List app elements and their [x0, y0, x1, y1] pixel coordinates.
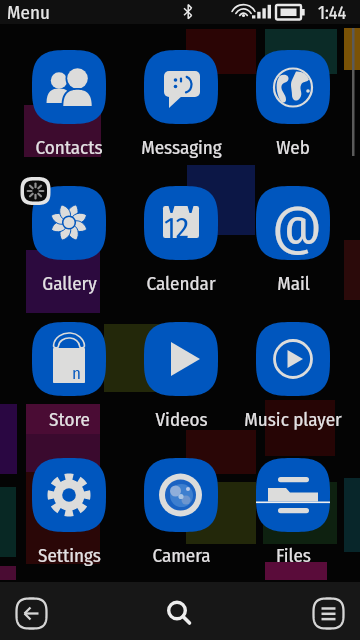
staticText: Menu [7, 1, 50, 24]
button[interactable]: n [13, 322, 125, 434]
button[interactable]: @ [237, 186, 349, 298]
staticText: Gallery [42, 272, 97, 295]
button[interactable]: Gallery [13, 186, 125, 298]
button[interactable]: Settings [13, 458, 125, 570]
staticText: Messaging [141, 136, 222, 159]
button[interactable]: Videos [125, 322, 237, 434]
staticText: Calendar [146, 272, 216, 295]
button[interactable]: Messaging [125, 50, 237, 162]
staticText: Contacts [35, 136, 103, 159]
button[interactable]: Search [163, 597, 196, 630]
staticText: Music player [244, 408, 342, 431]
staticText: Videos [155, 408, 208, 431]
staticText: Mail [277, 272, 310, 295]
staticText: Files [276, 544, 311, 567]
button[interactable]: Files [237, 458, 349, 570]
button[interactable]: Camera [125, 458, 237, 570]
staticText: 12 [164, 210, 189, 246]
button[interactable]: Web [237, 50, 349, 162]
staticText: Web [276, 136, 310, 159]
button[interactable]: Music player [237, 322, 349, 434]
staticText: Camera [152, 544, 211, 567]
button[interactable]: Contacts [13, 50, 125, 162]
button[interactable]: 12 [125, 186, 237, 298]
button[interactable]: Back [15, 597, 48, 630]
staticText: Settings [38, 544, 101, 567]
staticText: 1:44 [318, 2, 347, 24]
staticText: n [72, 363, 81, 383]
button[interactable]: Options [312, 597, 345, 630]
staticText: Store [49, 408, 90, 431]
staticText: @ [272, 194, 322, 259]
